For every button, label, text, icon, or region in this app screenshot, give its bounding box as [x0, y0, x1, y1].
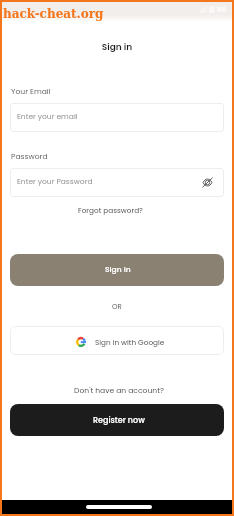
- staticText: Enter your Password: [17, 176, 93, 186]
- staticText: Register now: [93, 415, 145, 426]
- button[interactable]: Show password: [199, 174, 215, 190]
- button[interactable]: Enter your email: [10, 103, 224, 132]
- staticText: Password: [11, 151, 48, 162]
- staticText: Forgot password?: [78, 205, 143, 215]
- staticText: Don't have an account?: [4, 385, 234, 396]
- staticText: OR: [2, 302, 232, 312]
- staticText: Sign in: [2, 41, 232, 54]
- staticText: Sign in with Google: [95, 337, 165, 347]
- button[interactable]: Forgot password?: [76, 204, 145, 216]
- button[interactable]: Enter your Password: [10, 168, 224, 197]
- button[interactable]: Sign in: [10, 254, 224, 286]
- button[interactable]: Sign in with Google: [10, 326, 224, 355]
- staticText: Sign in: [105, 264, 131, 275]
- button[interactable]: Register now: [10, 404, 224, 436]
- staticText: hack-cheat.org: [3, 7, 104, 21]
- staticText: Enter your email: [17, 111, 78, 121]
- staticText: Your Email: [11, 86, 51, 97]
